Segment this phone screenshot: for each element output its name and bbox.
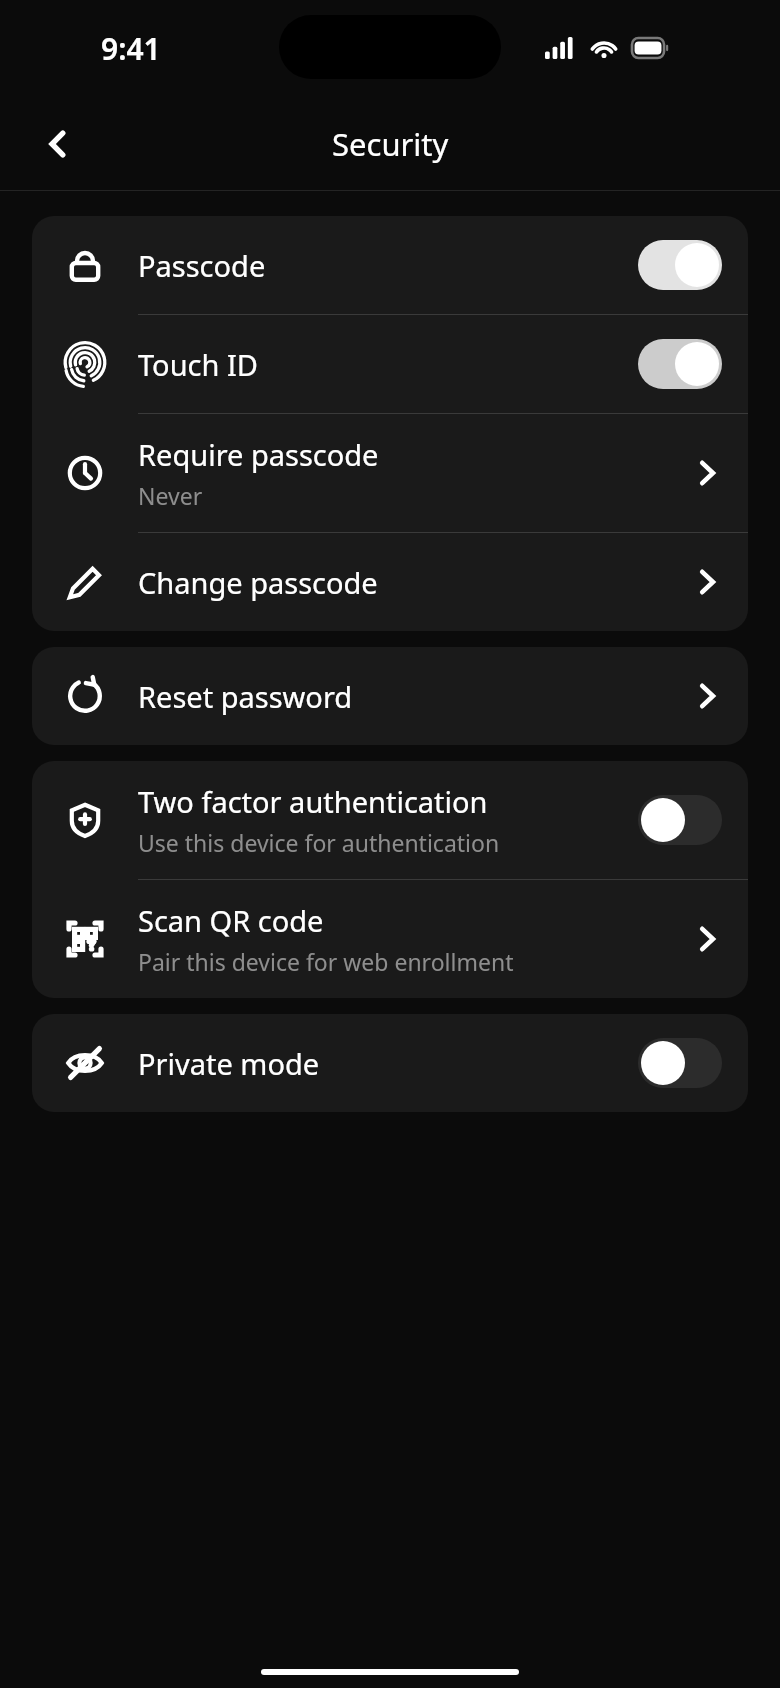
button[interactable]: Reset password xyxy=(32,647,748,745)
button[interactable]: Back xyxy=(26,112,90,176)
staticText: Use this device for authentication xyxy=(138,827,500,858)
button[interactable]: Private mode xyxy=(638,1038,722,1088)
button[interactable]: Private mode xyxy=(32,1014,748,1112)
button[interactable]: Change passcode xyxy=(32,533,748,631)
staticText: Security xyxy=(332,123,449,165)
staticText: Touch ID xyxy=(138,345,258,384)
button[interactable]: Two factor authentication xyxy=(32,761,748,879)
staticText: Reset password xyxy=(138,677,353,716)
staticText: 9:41 xyxy=(101,28,161,69)
staticText: Never xyxy=(138,480,203,511)
staticText: Change passcode xyxy=(138,563,378,602)
staticText: Private mode xyxy=(138,1044,320,1083)
button[interactable]: Touch ID xyxy=(638,339,722,389)
button[interactable]: Passcode xyxy=(32,216,748,314)
button[interactable]: Require passcode xyxy=(32,414,748,532)
staticText: Scan QR code xyxy=(138,901,324,940)
button[interactable]: Passcode xyxy=(638,240,722,290)
staticText: Passcode xyxy=(138,246,266,285)
staticText: Two factor authentication xyxy=(138,782,488,821)
button[interactable]: Scan QR code xyxy=(32,880,748,998)
staticText: Pair this device for web enrollment xyxy=(138,946,514,977)
staticText: Require passcode xyxy=(138,435,379,474)
button[interactable]: Touch ID xyxy=(32,315,748,413)
button[interactable]: Two factor authentication xyxy=(638,795,722,845)
